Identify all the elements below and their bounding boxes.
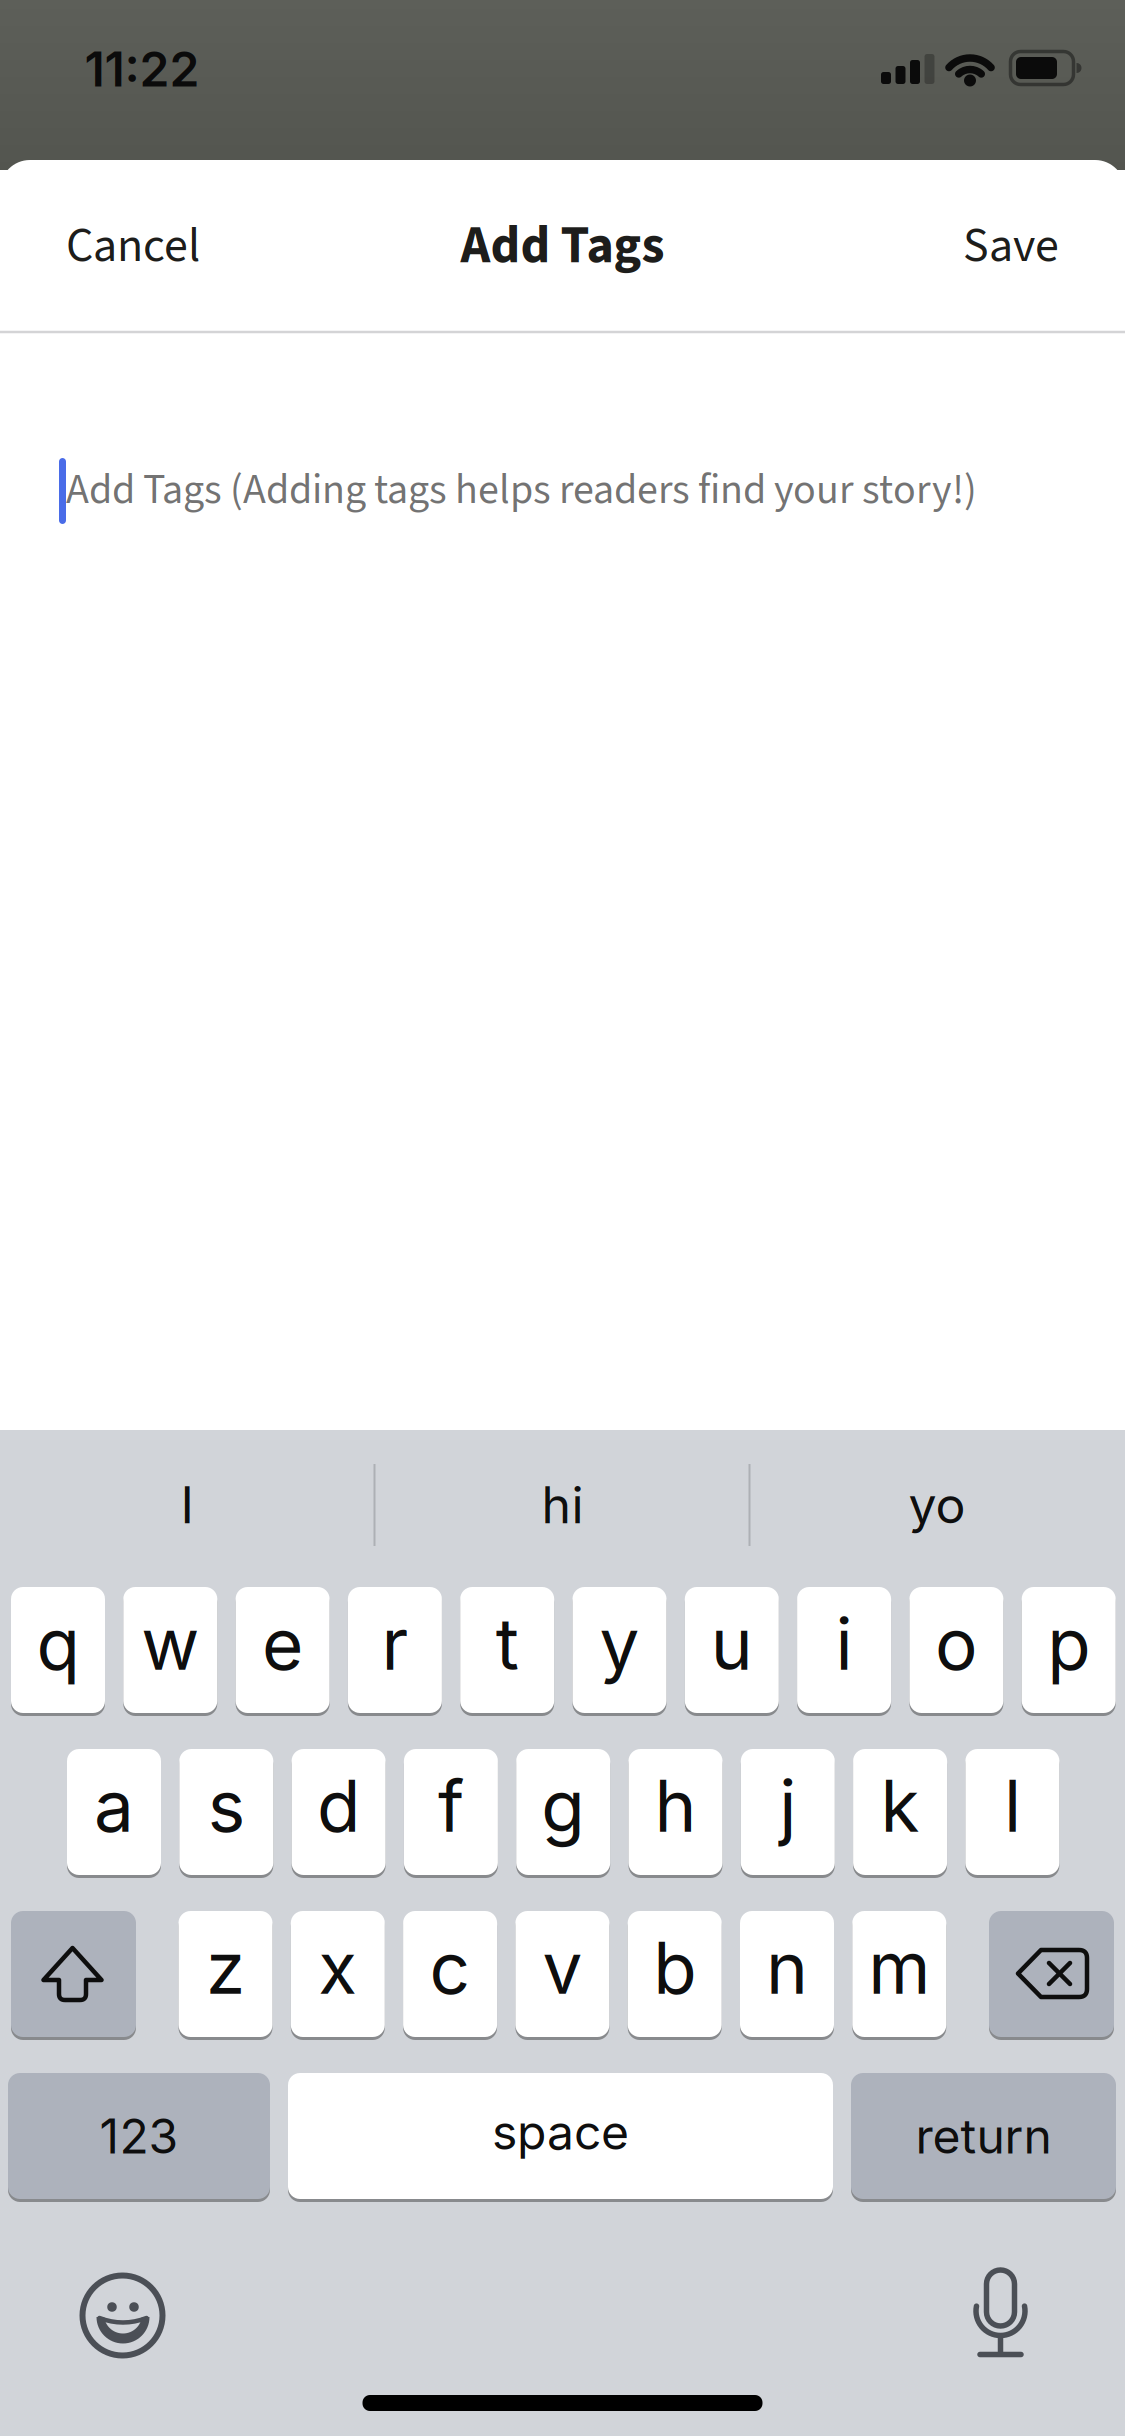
staticText: j xyxy=(779,1763,796,1849)
staticText: o xyxy=(935,1601,978,1687)
staticText: x xyxy=(318,1925,357,2011)
staticText: e xyxy=(262,1601,303,1687)
staticText: l xyxy=(1004,1763,1021,1849)
staticText: space xyxy=(492,2103,629,2161)
staticText: z xyxy=(206,1925,245,2011)
staticText: q xyxy=(36,1601,79,1687)
staticText: h xyxy=(654,1763,696,1849)
staticText: 123 xyxy=(99,2107,178,2165)
staticText: 11:22 xyxy=(84,40,199,98)
staticText: I xyxy=(180,1475,193,1535)
staticText: n xyxy=(766,1925,808,2011)
staticText: a xyxy=(94,1763,134,1849)
staticText: return xyxy=(915,2107,1051,2165)
staticText: m xyxy=(868,1925,930,2011)
staticText: p xyxy=(1047,1601,1090,1687)
staticText: hi xyxy=(541,1475,583,1535)
staticText: c xyxy=(430,1925,471,2011)
staticText: t xyxy=(496,1601,519,1687)
staticText: Save xyxy=(963,212,1059,280)
staticText: f xyxy=(438,1763,464,1849)
staticText: k xyxy=(881,1763,920,1849)
staticText: y xyxy=(599,1601,639,1687)
staticText: g xyxy=(541,1763,585,1849)
staticText: i xyxy=(836,1601,853,1687)
staticText: s xyxy=(208,1763,245,1849)
staticText: r xyxy=(381,1601,408,1687)
staticText: b xyxy=(653,1925,696,2011)
staticText: v xyxy=(542,1925,582,2011)
staticText: u xyxy=(711,1601,753,1687)
staticText: d xyxy=(317,1763,360,1849)
staticText: Add Tags xyxy=(460,209,664,283)
staticText: Add Tags (Adding tags helps readers find… xyxy=(66,460,977,520)
staticText: w xyxy=(141,1601,199,1687)
staticText: Cancel xyxy=(66,212,200,280)
staticText: yo xyxy=(908,1475,965,1535)
